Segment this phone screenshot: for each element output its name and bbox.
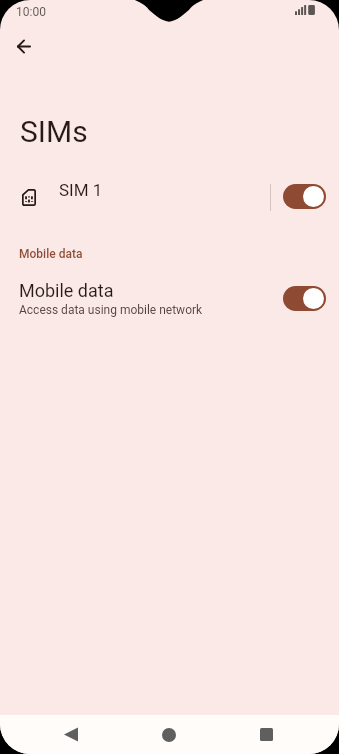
staticText: Mobile data bbox=[19, 247, 83, 261]
button[interactable]: Toggle bbox=[283, 286, 326, 311]
staticText: Access data using mobile network bbox=[19, 303, 203, 317]
button[interactable]: Home bbox=[149, 715, 189, 754]
button[interactable]: Back bbox=[51, 715, 91, 754]
button[interactable]: Mobile data bbox=[0, 274, 339, 326]
staticText: Mobile data bbox=[19, 280, 114, 301]
button[interactable]: SIM 1 bbox=[0, 175, 339, 221]
button[interactable]: Navigate up bbox=[2, 24, 46, 68]
button[interactable]: Recent apps bbox=[246, 715, 286, 754]
staticText: 10:00 bbox=[16, 5, 46, 19]
button[interactable]: Toggle bbox=[283, 184, 326, 209]
staticText: SIMs bbox=[20, 114, 88, 149]
staticText: SIM 1 bbox=[59, 180, 103, 200]
